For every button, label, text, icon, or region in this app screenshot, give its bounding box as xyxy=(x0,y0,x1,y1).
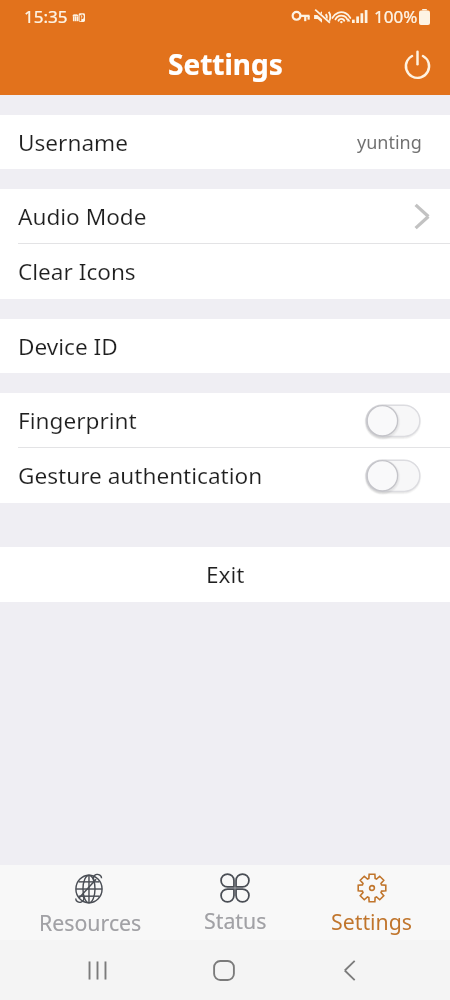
staticText: 15:35 xyxy=(24,5,68,28)
staticText: Device ID xyxy=(18,331,118,362)
staticText: Settings xyxy=(331,907,413,936)
staticText: Gesture authentication xyxy=(18,460,263,491)
staticText: Status xyxy=(204,906,267,935)
staticText: Username xyxy=(18,127,128,158)
staticText: Audio Mode xyxy=(18,201,147,232)
button[interactable]: Resources xyxy=(15,865,165,940)
staticText: Clear Icons xyxy=(18,256,136,287)
button[interactable]: Settings xyxy=(297,865,447,940)
button[interactable]: Gesture authentication xyxy=(0,448,450,503)
staticText: Exit xyxy=(206,559,245,590)
button[interactable]: Audio Mode xyxy=(0,189,450,244)
button[interactable]: Home xyxy=(213,960,235,981)
staticText: 100% xyxy=(374,5,418,28)
button[interactable]: Recents xyxy=(88,960,107,981)
staticText: Fingerprint xyxy=(18,405,137,436)
staticText: Settings xyxy=(168,45,283,83)
button[interactable]: Username xyxy=(0,115,450,169)
button[interactable]: Status xyxy=(160,865,310,940)
button[interactable]: Clear Icons xyxy=(0,244,450,299)
button[interactable]: Fingerprint xyxy=(0,393,450,448)
button[interactable]: Power xyxy=(394,41,440,87)
button[interactable]: Device ID xyxy=(0,319,450,373)
staticText: yunting xyxy=(357,130,422,155)
staticText: Resources xyxy=(39,908,142,937)
button[interactable]: Back xyxy=(341,960,359,981)
button[interactable]: Exit xyxy=(0,547,450,602)
